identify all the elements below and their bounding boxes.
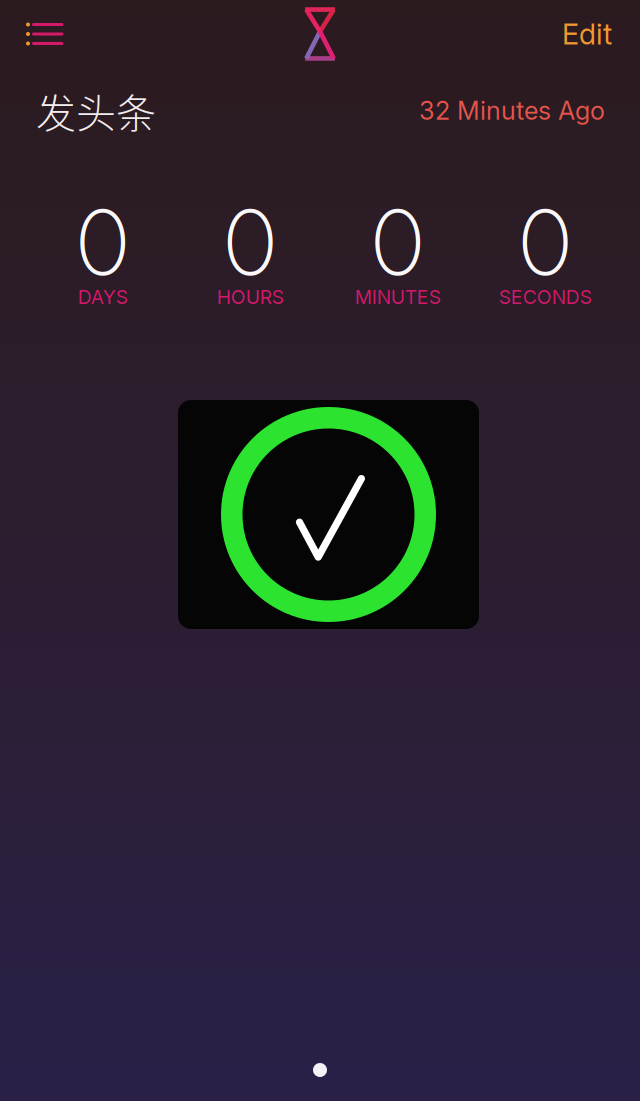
staticText: 0	[371, 174, 425, 310]
staticText: DAYS	[78, 285, 128, 309]
staticText: 0	[223, 174, 277, 310]
button[interactable]: Menu	[0, 10, 63, 58]
button[interactable]: Edit	[562, 7, 640, 61]
staticText: SECONDS	[499, 285, 592, 309]
staticText: Edit	[562, 17, 612, 51]
staticText: 0	[76, 174, 130, 310]
staticText: 32 Minutes Ago	[419, 95, 605, 126]
staticText: 发头条	[36, 81, 156, 139]
staticText: 0	[518, 174, 572, 310]
staticText: HOURS	[217, 285, 284, 309]
staticText: MINUTES	[355, 285, 441, 309]
